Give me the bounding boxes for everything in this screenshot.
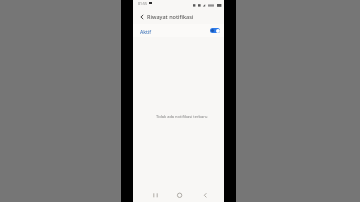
button[interactable] xyxy=(172,188,188,202)
staticText: Aktif xyxy=(140,29,152,36)
staticText: Riwayat notifikasi xyxy=(147,13,194,20)
button[interactable]: Aktif xyxy=(133,24,224,37)
staticText: 01:55 xyxy=(138,1,147,6)
button[interactable] xyxy=(210,28,220,33)
button[interactable] xyxy=(148,188,164,202)
button[interactable] xyxy=(198,188,214,202)
staticText: Tidak ada notifikasi terbaru xyxy=(156,114,208,119)
button[interactable] xyxy=(137,12,146,22)
